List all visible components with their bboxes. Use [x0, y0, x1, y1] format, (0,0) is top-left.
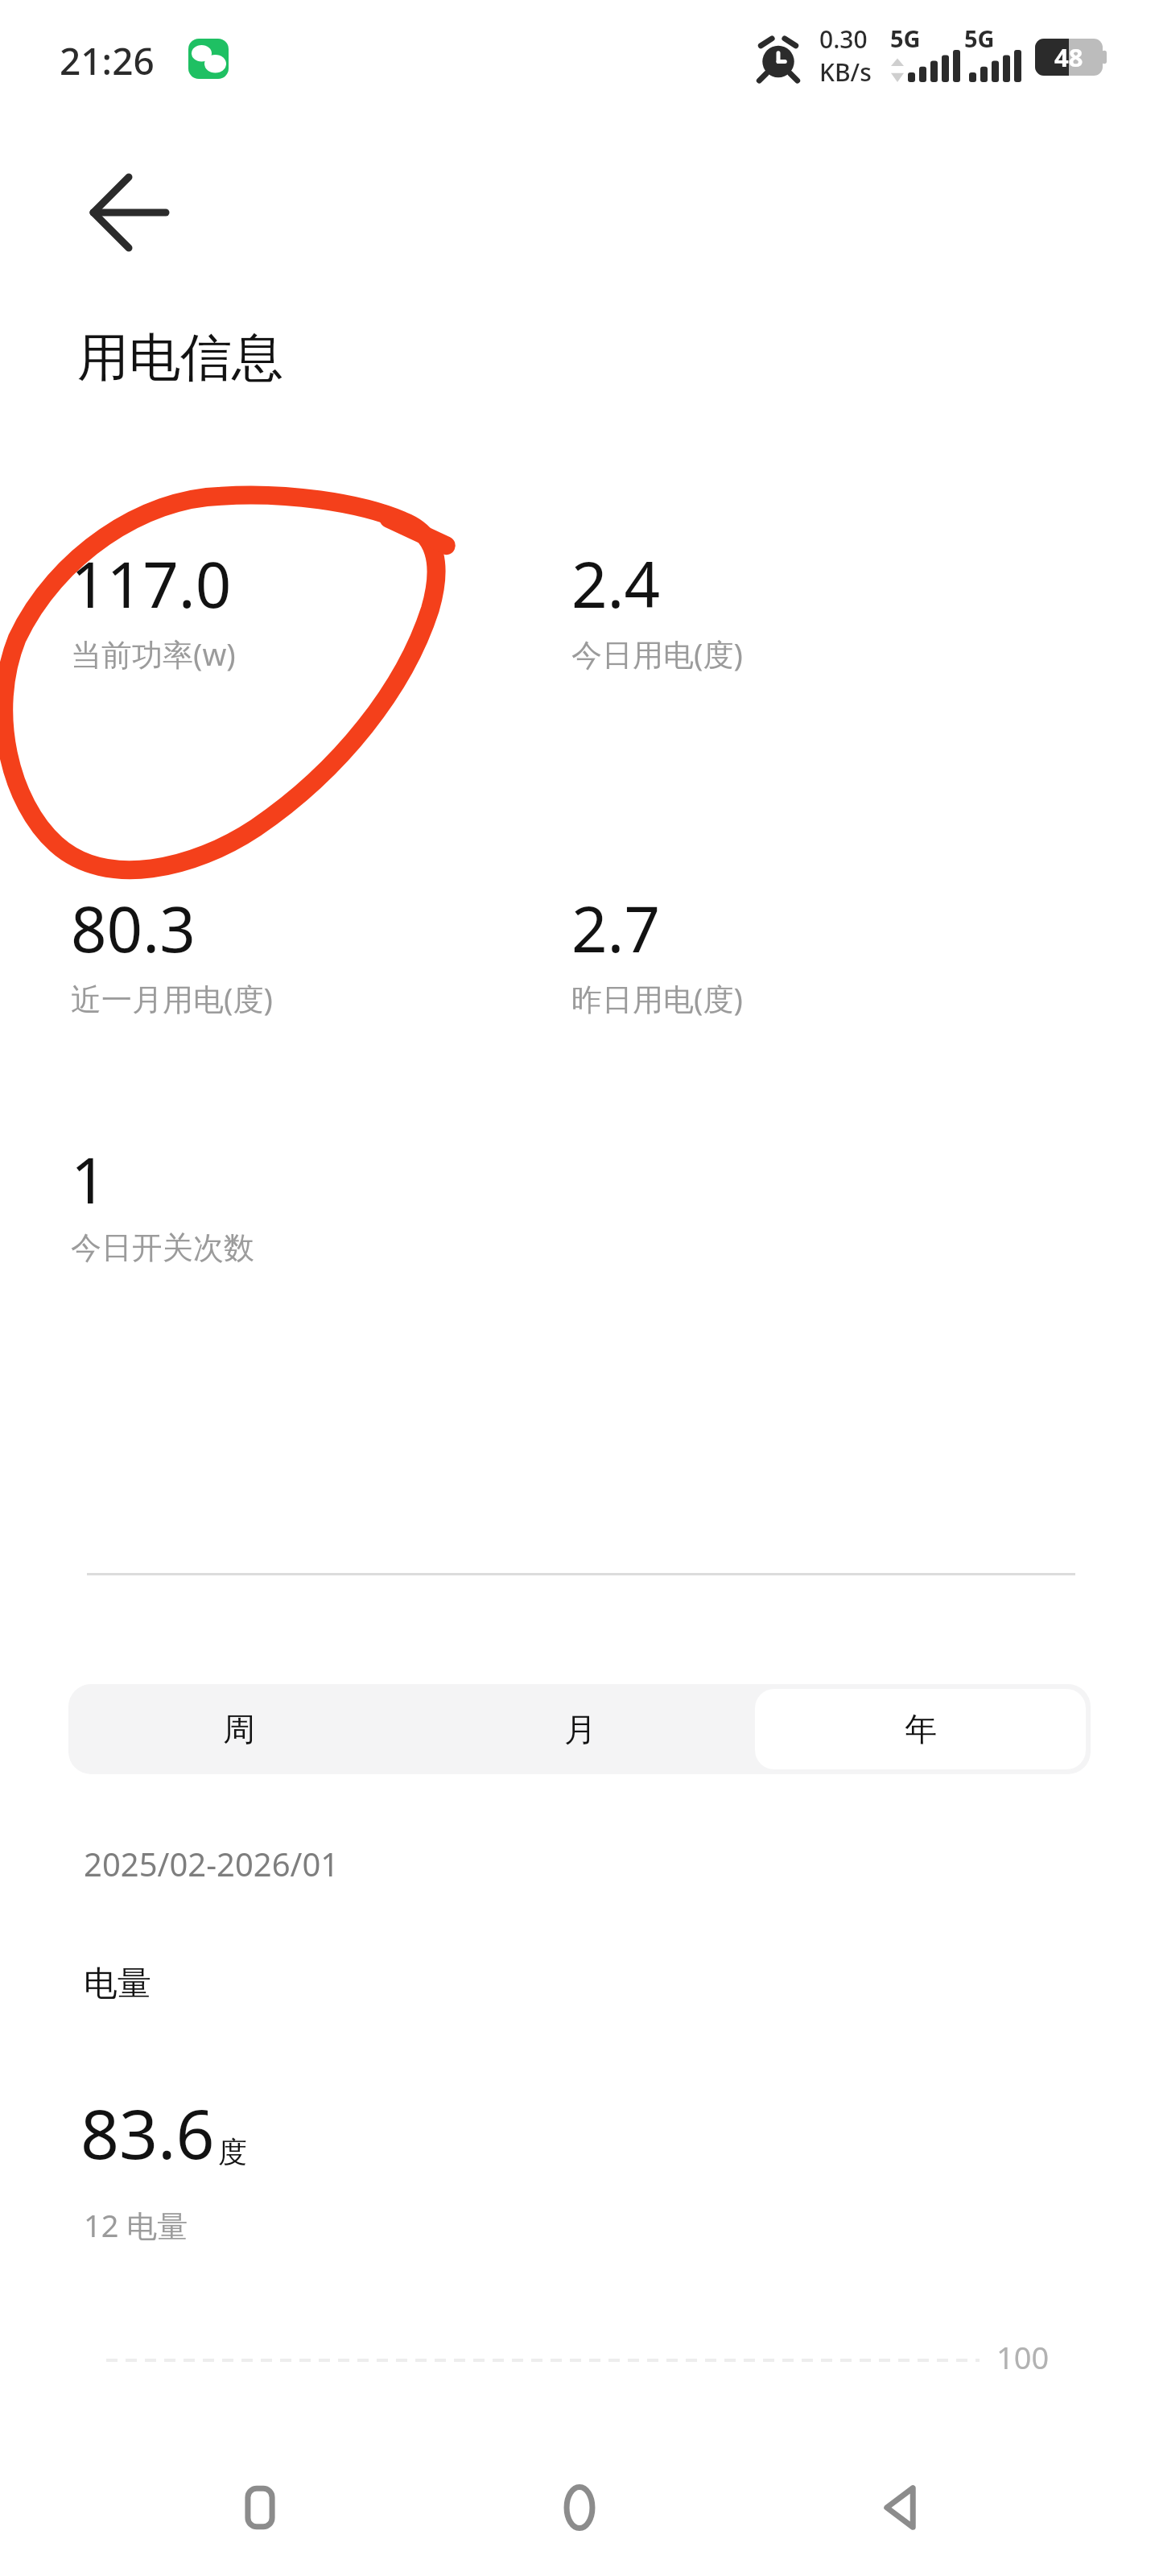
button[interactable]: 月 — [415, 1689, 745, 1769]
staticText: 5G — [964, 23, 995, 54]
button[interactable]: 80.3 — [71, 885, 286, 1019]
staticText: 117.0 — [71, 541, 232, 626]
staticText: 2.4 — [571, 541, 661, 626]
button[interactable]: 1 — [71, 1137, 267, 1267]
button[interactable]: Home — [519, 2447, 640, 2568]
staticText: 月 — [564, 1709, 596, 1749]
staticText: 21:26 — [60, 35, 155, 86]
staticText: 近一月用电(度) — [71, 977, 273, 1019]
staticText: 2025/02-2026/01 — [84, 1842, 340, 1885]
button[interactable]: 2.4 — [571, 541, 756, 675]
staticText: 电量 — [84, 1963, 151, 2005]
staticText: 2.7 — [571, 885, 661, 971]
staticText: 83.6 — [80, 2087, 215, 2178]
staticText: 12 电量 — [84, 2204, 188, 2246]
staticText: 80.3 — [71, 885, 196, 971]
button[interactable]: Back — [69, 166, 163, 259]
button[interactable]: 周 — [73, 1689, 405, 1769]
staticText: 100 — [996, 2336, 1050, 2378]
staticText: 当前功率(w) — [71, 633, 236, 675]
staticText: KB/s — [819, 56, 872, 89]
button[interactable]: 117.0 — [71, 541, 249, 675]
staticText: 0.30 — [819, 23, 868, 56]
staticText: 年 — [905, 1709, 937, 1749]
staticText: 昨日用电(度) — [571, 977, 743, 1019]
staticText: 5G — [890, 23, 921, 54]
button[interactable]: 2.7 — [571, 885, 756, 1019]
staticText: 今日用电(度) — [571, 633, 743, 675]
button[interactable]: Back — [839, 2447, 960, 2568]
staticText: 周 — [223, 1709, 255, 1749]
staticText: 今日开关次数 — [71, 1228, 254, 1267]
button[interactable]: 年 — [755, 1689, 1086, 1769]
staticText: 用电信息 — [77, 325, 283, 390]
staticText: 1 — [71, 1137, 107, 1222]
staticText: 度 — [218, 2134, 247, 2170]
button[interactable]: Recent apps — [200, 2447, 320, 2568]
staticText: 48 — [1054, 40, 1083, 74]
